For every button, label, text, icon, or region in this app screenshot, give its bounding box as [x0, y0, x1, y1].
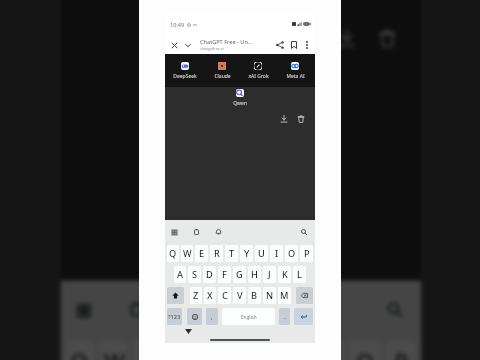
button[interactable]: Backspace: [296, 287, 313, 304]
button[interactable]: U: [255, 245, 268, 262]
staticText: C: [222, 289, 228, 302]
button[interactable]: Y: [240, 245, 253, 262]
staticText: W: [183, 247, 192, 260]
button[interactable]: O: [285, 245, 298, 262]
staticText: ,: [211, 312, 213, 322]
staticText: E: [199, 247, 205, 260]
button[interactable]: O: [349, 341, 380, 360]
button[interactable]: Bookmark: [287, 38, 301, 52]
button[interactable]: W: [181, 245, 193, 262]
button[interactable]: N: [263, 287, 276, 304]
button[interactable]: B: [248, 287, 261, 304]
staticText: B: [251, 289, 258, 302]
button[interactable]: F: [218, 266, 231, 283]
staticText: Qwen: [233, 100, 247, 107]
button[interactable]: DeepSeek: [169, 62, 201, 80]
button[interactable]: A: [174, 266, 186, 283]
button[interactable]: Q: [167, 245, 179, 262]
staticText: O: [288, 247, 296, 260]
button[interactable]: Shift: [167, 287, 184, 304]
button[interactable]: Comma: [206, 308, 218, 325]
button[interactable]: Period: [279, 308, 290, 325]
staticText: U: [258, 247, 265, 260]
button[interactable]: Space: [222, 308, 275, 325]
button[interactable]: Search: [298, 226, 310, 238]
button[interactable]: Q: [66, 341, 95, 360]
button[interactable]: Enter: [294, 308, 313, 325]
button[interactable]: Notifications: [212, 226, 224, 238]
staticText: ChatGPT Free - Un…: [200, 38, 253, 46]
button[interactable]: Clipboard: [121, 295, 150, 324]
staticText: P: [304, 247, 310, 260]
button[interactable]: Search: [380, 295, 409, 324]
staticText: I: [275, 247, 279, 260]
staticText: X: [207, 289, 213, 302]
button[interactable]: I: [270, 245, 283, 262]
button[interactable]: Z: [190, 287, 202, 304]
staticText: H: [251, 268, 258, 281]
button[interactable]: Delete: [294, 112, 307, 125]
button[interactable]: T: [205, 341, 236, 360]
button[interactable]: Delete: [371, 22, 402, 53]
button[interactable]: More options: [301, 39, 313, 51]
button[interactable]: T: [225, 245, 238, 262]
staticText: J: [268, 268, 271, 281]
button[interactable]: D: [203, 266, 216, 283]
staticText: Q: [169, 247, 177, 260]
button[interactable]: Emoji: [187, 308, 202, 325]
button[interactable]: Symbols: [167, 308, 182, 325]
button[interactable]: J: [263, 266, 276, 283]
button[interactable]: Apps: [168, 226, 180, 238]
staticText: .: [284, 312, 286, 322]
button[interactable]: Download: [330, 22, 361, 53]
button[interactable]: U: [277, 341, 308, 360]
staticText: D: [206, 268, 213, 281]
button[interactable]: Qwen: [224, 89, 256, 107]
staticText: ?123: [168, 313, 181, 321]
button[interactable]: W: [99, 341, 128, 360]
button[interactable]: E: [133, 341, 164, 360]
button[interactable]: V: [233, 287, 246, 304]
staticText: Z: [193, 289, 199, 302]
button[interactable]: Hide keyboard: [183, 326, 193, 336]
staticText: xAI Grok: [248, 73, 269, 80]
staticText: L: [297, 268, 302, 281]
button[interactable]: Notifications: [174, 295, 203, 324]
button[interactable]: X: [204, 287, 216, 304]
staticText: V: [237, 289, 243, 302]
button[interactable]: Expand: [181, 38, 195, 52]
button[interactable]: P: [300, 245, 313, 262]
staticText: DeepSeek: [173, 73, 197, 80]
button[interactable]: Apps: [68, 295, 97, 324]
staticText: Y: [244, 247, 250, 260]
button[interactable]: K: [278, 266, 291, 283]
button[interactable]: R: [210, 245, 223, 262]
button[interactable]: Clipboard: [190, 226, 202, 238]
staticText: M: [280, 289, 289, 302]
button[interactable]: Y: [241, 341, 272, 360]
button[interactable]: M: [278, 287, 291, 304]
button[interactable]: Download: [277, 112, 290, 125]
button[interactable]: C: [218, 287, 231, 304]
button[interactable]: Share: [273, 38, 287, 52]
button[interactable]: P: [385, 341, 416, 360]
button[interactable]: Claude: [206, 62, 238, 80]
button[interactable]: Close: [167, 38, 181, 52]
button[interactable]: xAI Grok: [242, 62, 274, 80]
staticText: Claude: [214, 73, 231, 80]
button[interactable]: Meta AI: [279, 62, 311, 80]
staticText: P: [395, 346, 409, 360]
button[interactable]: E: [195, 245, 208, 262]
button[interactable]: I: [313, 341, 344, 360]
button[interactable]: H: [248, 266, 261, 283]
button[interactable]: R: [169, 341, 200, 360]
button[interactable]: L: [293, 266, 306, 283]
button[interactable]: S: [188, 266, 201, 283]
button[interactable]: G: [233, 266, 246, 283]
